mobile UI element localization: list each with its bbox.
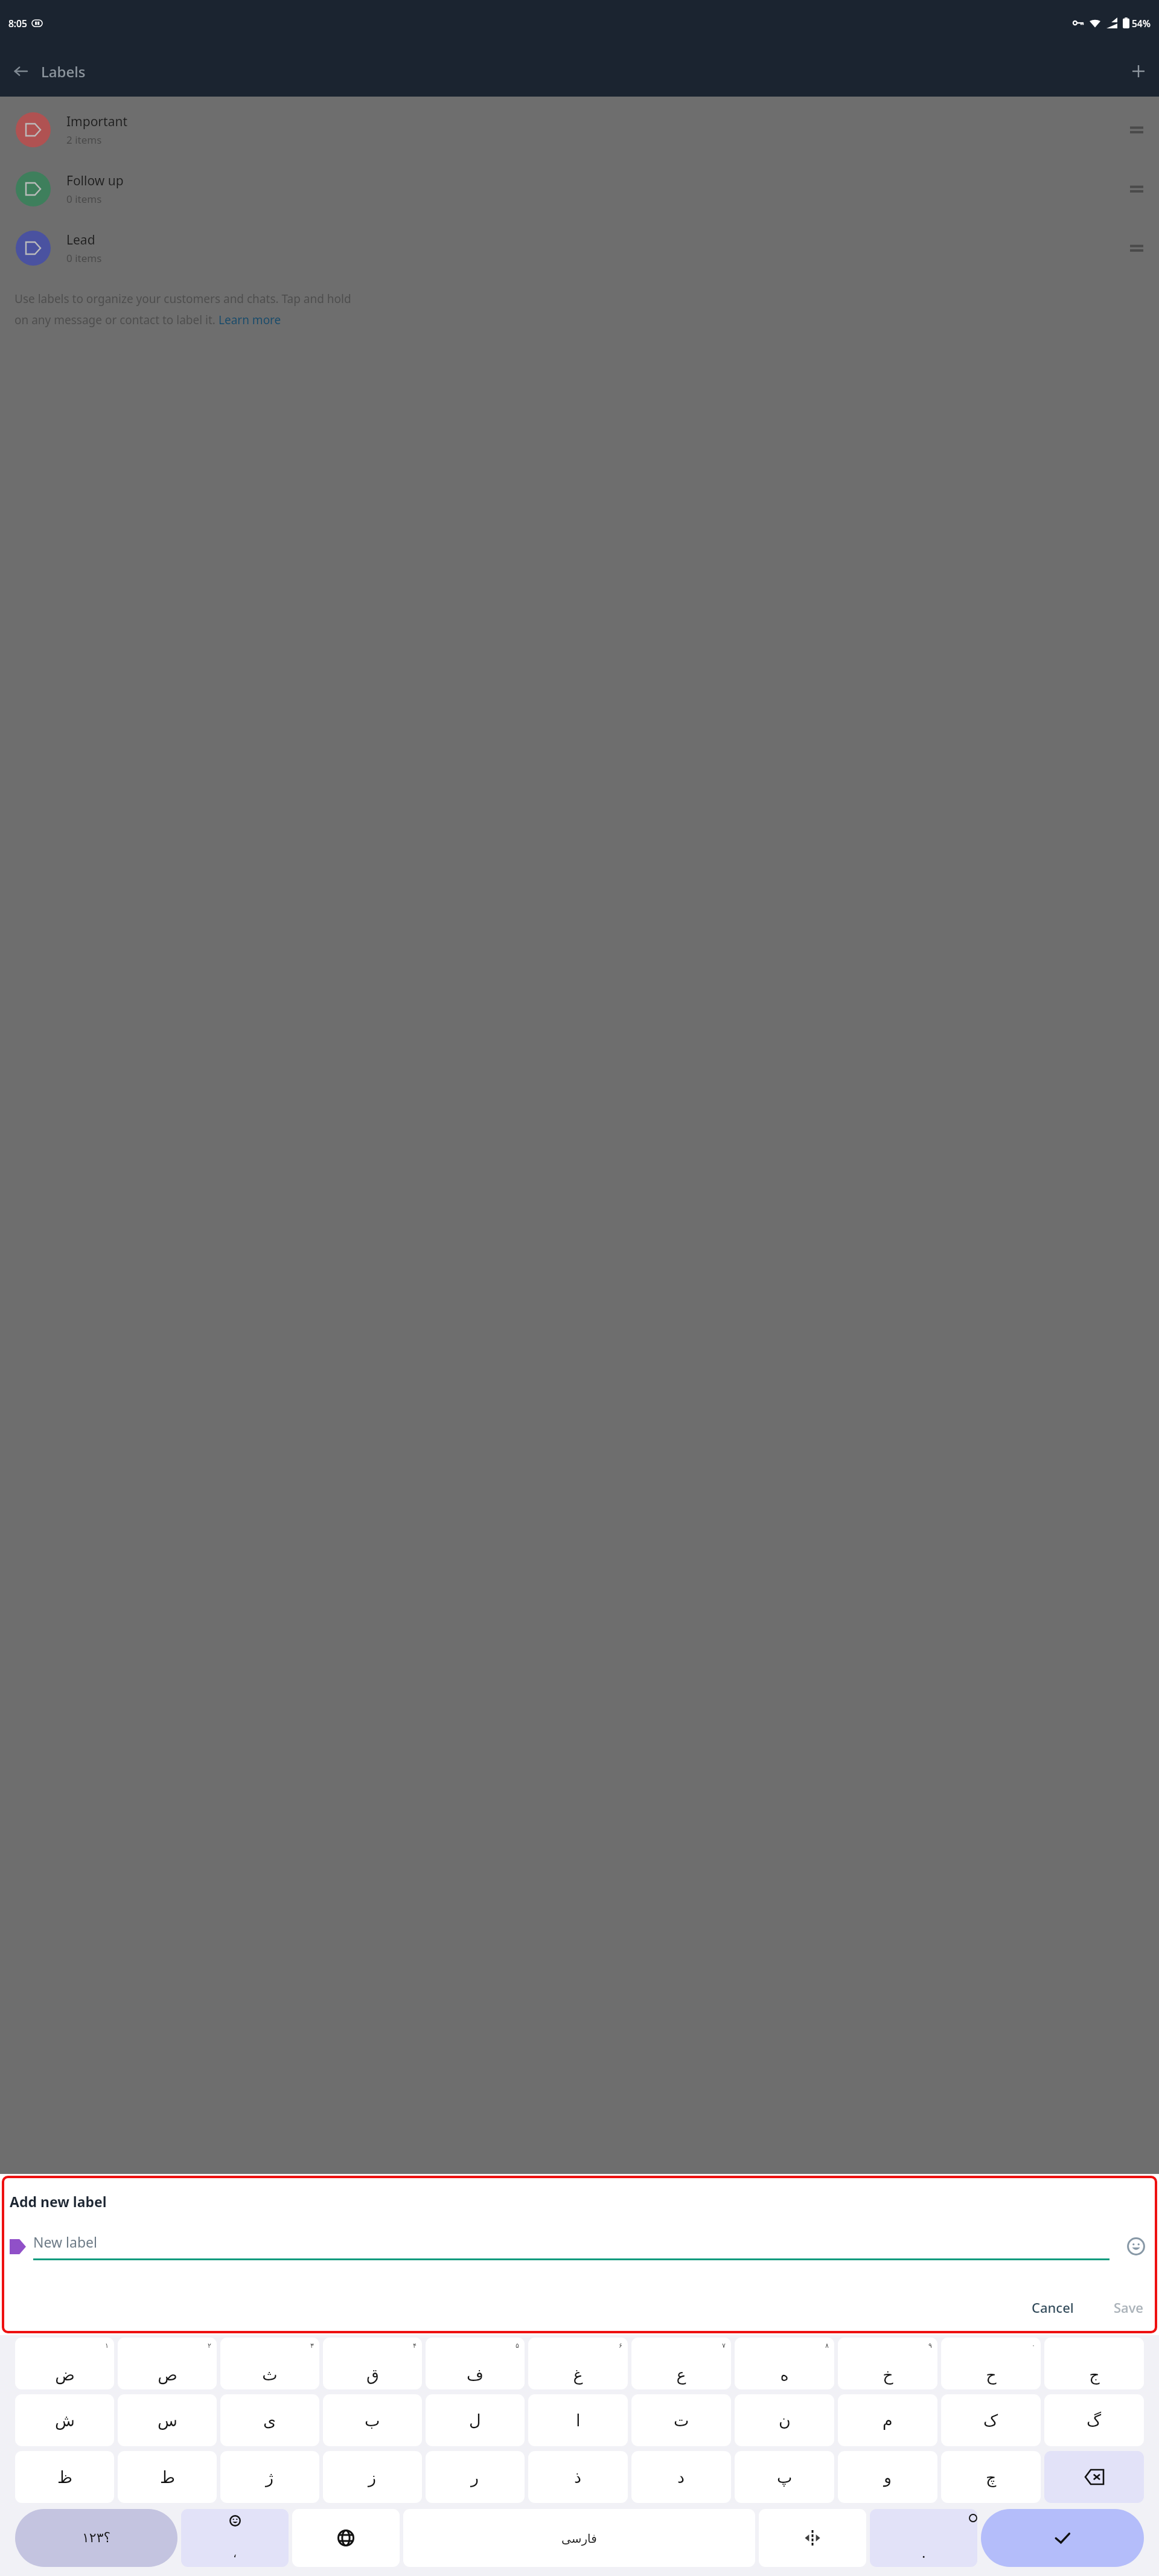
button[interactable]: گ	[1044, 2394, 1144, 2446]
staticText: Important	[66, 113, 127, 130]
staticText: ز	[368, 2468, 377, 2487]
button[interactable]: ک	[941, 2394, 1041, 2446]
staticText: 8:05	[8, 17, 27, 30]
button[interactable]: ذ	[528, 2451, 628, 2503]
button[interactable]: د	[631, 2451, 731, 2503]
staticText: ۶	[619, 2342, 622, 2350]
staticText: ۳	[310, 2342, 314, 2350]
button[interactable]: Period	[870, 2509, 977, 2567]
button[interactable]: چ	[941, 2451, 1041, 2503]
staticText: ۲	[208, 2342, 211, 2350]
staticText: ۷	[722, 2342, 726, 2350]
button[interactable]: ر	[426, 2451, 525, 2503]
staticText: .	[922, 2542, 926, 2562]
staticText: ۸	[825, 2342, 829, 2350]
staticText: و	[884, 2468, 892, 2487]
staticText: Use labels to organize your customers an…	[14, 291, 351, 307]
button[interactable]: ۶	[528, 2338, 628, 2389]
staticText: 2 items	[66, 133, 102, 147]
staticText: ص	[158, 2365, 177, 2384]
staticText: ط	[160, 2468, 175, 2487]
button[interactable]: ز	[323, 2451, 422, 2503]
staticText: ک	[983, 2411, 998, 2430]
staticText: خ	[883, 2365, 893, 2384]
button[interactable]: Enter	[981, 2509, 1144, 2567]
button[interactable]: Cursor control	[759, 2509, 866, 2567]
button[interactable]: و	[838, 2451, 937, 2503]
button[interactable]: ۱۲۳؟	[15, 2509, 177, 2567]
button[interactable]: ط	[118, 2451, 217, 2503]
button[interactable]: ب	[323, 2394, 422, 2446]
staticText: ح	[986, 2365, 997, 2384]
button[interactable]: ۷	[631, 2338, 731, 2389]
button[interactable]: ش	[15, 2394, 114, 2446]
staticText: ش	[55, 2411, 75, 2430]
staticText: غ	[573, 2365, 583, 2384]
staticText: New label	[33, 2232, 97, 2251]
button[interactable]: Space	[403, 2509, 755, 2567]
staticText: ت	[674, 2411, 689, 2430]
button[interactable]: Important	[0, 100, 1159, 159]
staticText: Lead	[66, 231, 95, 249]
button[interactable]: ی	[220, 2394, 319, 2446]
staticText: ا	[576, 2411, 581, 2430]
button[interactable]: ۸	[735, 2338, 834, 2389]
staticText: ث	[262, 2365, 278, 2384]
staticText: ظ	[57, 2468, 72, 2487]
button[interactable]: ۵	[426, 2338, 525, 2389]
button[interactable]: Follow up	[0, 159, 1159, 219]
button[interactable]: ا	[528, 2394, 628, 2446]
staticText: پ	[777, 2468, 793, 2487]
button[interactable]: ظ	[15, 2451, 114, 2503]
button[interactable]: Save	[1108, 2293, 1149, 2321]
staticText: ع	[676, 2365, 686, 2384]
staticText: چ	[986, 2468, 997, 2487]
staticText: Labels	[41, 62, 86, 81]
button[interactable]: س	[118, 2394, 217, 2446]
staticText: ر	[471, 2468, 479, 2487]
staticText: ،	[233, 2546, 237, 2560]
staticText: Follow up	[66, 172, 124, 190]
button[interactable]: ۲	[118, 2338, 217, 2389]
button[interactable]: Add label	[1124, 57, 1153, 86]
staticText: ۱	[105, 2342, 109, 2350]
staticText: ض	[55, 2365, 75, 2384]
button[interactable]: ل	[426, 2394, 525, 2446]
button[interactable]: ن	[735, 2394, 834, 2446]
button[interactable]: Lead	[0, 219, 1159, 278]
button[interactable]: ۱	[15, 2338, 114, 2389]
button[interactable]: ژ	[220, 2451, 319, 2503]
button[interactable]: ۳	[220, 2338, 319, 2389]
staticText: ۰	[1032, 2342, 1035, 2350]
button[interactable]: پ	[735, 2451, 834, 2503]
staticText: 54%	[1132, 17, 1151, 30]
staticText: ن	[779, 2411, 791, 2430]
button[interactable]: Change language	[292, 2509, 400, 2567]
staticText: فارسی	[561, 2531, 597, 2545]
staticText: ۴	[413, 2342, 417, 2350]
staticText: Cancel	[1032, 2298, 1074, 2316]
button[interactable]: Emoji	[181, 2509, 289, 2567]
button[interactable]: Backspace	[1044, 2451, 1144, 2503]
staticText: 0 items	[66, 251, 102, 265]
button[interactable]: ت	[631, 2394, 731, 2446]
staticText: ف	[467, 2365, 484, 2384]
button[interactable]: م	[838, 2394, 937, 2446]
button[interactable]: Cancel	[1021, 2293, 1085, 2321]
staticText: س	[158, 2411, 177, 2430]
button[interactable]: Back	[6, 57, 35, 86]
button[interactable]: ۰	[941, 2338, 1041, 2389]
staticText: گ	[1087, 2411, 1102, 2430]
staticText: Add new label	[10, 2192, 107, 2211]
button[interactable]: ج	[1044, 2338, 1144, 2389]
button[interactable]: ۹	[838, 2338, 937, 2389]
staticText: ق	[366, 2365, 379, 2384]
staticText: ۹	[928, 2342, 932, 2350]
staticText: ج	[1089, 2365, 1100, 2384]
staticText: م	[883, 2411, 893, 2430]
button[interactable]: Learn more	[219, 312, 281, 328]
button[interactable]: Emoji	[1123, 2233, 1149, 2260]
staticText: ژ	[266, 2468, 274, 2487]
button[interactable]: ۴	[323, 2338, 422, 2389]
staticText: ه	[780, 2365, 789, 2384]
